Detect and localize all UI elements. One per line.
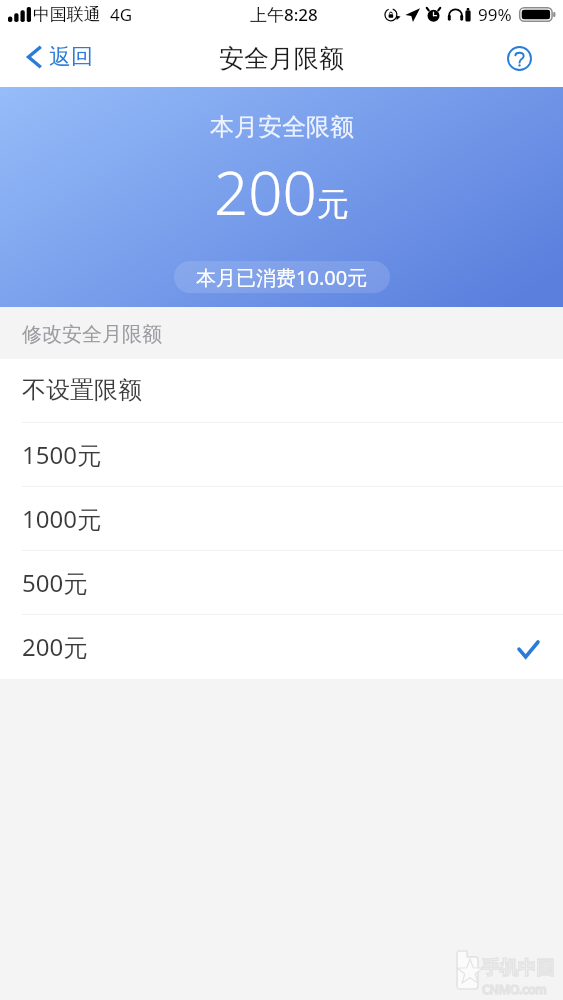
button[interactable]: 1500元	[0, 423, 563, 487]
staticText: 1000元	[22, 502, 101, 535]
staticText: 修改安全月限额	[22, 322, 162, 347]
staticText: 上午8:28	[250, 3, 318, 26]
button[interactable]: Help	[507, 46, 532, 71]
staticText: 不设置限额	[22, 375, 142, 405]
staticText: 200	[214, 151, 317, 233]
button[interactable]: 不设置限额	[0, 359, 563, 423]
staticText: 安全月限额	[219, 43, 344, 74]
staticText: 本月安全限额	[210, 112, 354, 142]
staticText: 手机中国	[482, 957, 554, 980]
staticText: 1500元	[22, 438, 101, 471]
button[interactable]: 本月已消费10.00元	[174, 261, 390, 293]
staticText: 4G	[110, 3, 133, 26]
button[interactable]: 返回 Back	[0, 37, 107, 81]
button[interactable]: 500元	[0, 551, 563, 615]
staticText: CNMO.com	[482, 981, 547, 997]
staticText: 手机中国	[482, 957, 554, 980]
staticText: 200元	[22, 630, 88, 663]
staticText: CNMO.com	[482, 981, 547, 997]
staticText: 本月已消费10.00元	[196, 264, 368, 291]
staticText: 中国联通	[33, 4, 101, 25]
button[interactable]: 1000元	[0, 487, 563, 551]
staticText: 500元	[22, 566, 88, 599]
staticText: 返回	[49, 43, 93, 71]
button[interactable]: 200元	[0, 615, 563, 679]
staticText: 99%	[478, 3, 512, 26]
staticText: 元	[317, 184, 349, 224]
